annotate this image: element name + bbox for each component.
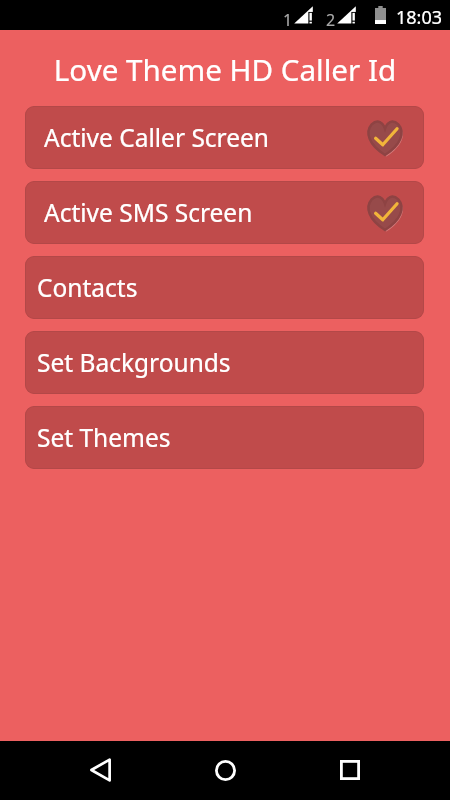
button[interactable]: Home: [201, 746, 249, 794]
button[interactable]: Set Themes: [25, 406, 424, 469]
button[interactable]: Back: [76, 746, 124, 794]
staticText: 2: [326, 9, 336, 31]
staticText: Active Caller Screen: [44, 121, 270, 154]
staticText: Set Backgrounds: [37, 346, 231, 379]
staticText: Contacts: [37, 271, 138, 304]
button[interactable]: Set Backgrounds: [25, 331, 424, 394]
button[interactable]: Contacts: [25, 256, 424, 319]
button[interactable]: Active SMS Screen: [25, 181, 424, 244]
button[interactable]: Active Caller Screen: [25, 106, 424, 169]
staticText: Love Theme HD Caller Id: [0, 49, 450, 89]
staticText: Active SMS Screen: [44, 196, 253, 229]
staticText: 1: [283, 9, 293, 31]
button[interactable]: Recents: [326, 746, 374, 794]
staticText: 18:03: [396, 5, 443, 30]
staticText: Set Themes: [37, 421, 171, 454]
